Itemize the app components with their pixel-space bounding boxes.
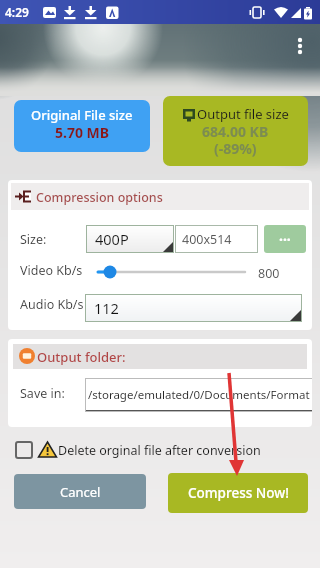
staticText: 112	[94, 298, 119, 318]
staticText: (-89%)	[214, 139, 257, 158]
staticText: 400x514	[182, 231, 232, 248]
staticText: Output folder:	[37, 348, 126, 366]
staticText: /storage/emulated/0/Documents/Format	[88, 387, 310, 403]
staticText: 800	[258, 265, 280, 282]
staticText: Compression options	[36, 189, 163, 206]
staticText: Compress Now!	[188, 484, 289, 502]
staticText: 400P	[95, 229, 129, 249]
staticText: Cancel	[60, 483, 101, 501]
staticText: ...	[279, 226, 291, 245]
staticText: Original File size	[31, 106, 133, 124]
staticText: 4:29	[5, 4, 29, 20]
staticText: 684.00 KB	[202, 122, 269, 141]
staticText: Video Kb/s	[20, 262, 83, 279]
staticText: Audio Kb/s	[20, 296, 84, 313]
staticText: 5.70 MB	[55, 123, 110, 142]
staticText: Delete orginal file after conversion	[58, 442, 261, 459]
staticText: Output file size	[197, 105, 289, 123]
staticText: Size:	[20, 231, 47, 248]
staticText: Save in:	[20, 385, 65, 402]
